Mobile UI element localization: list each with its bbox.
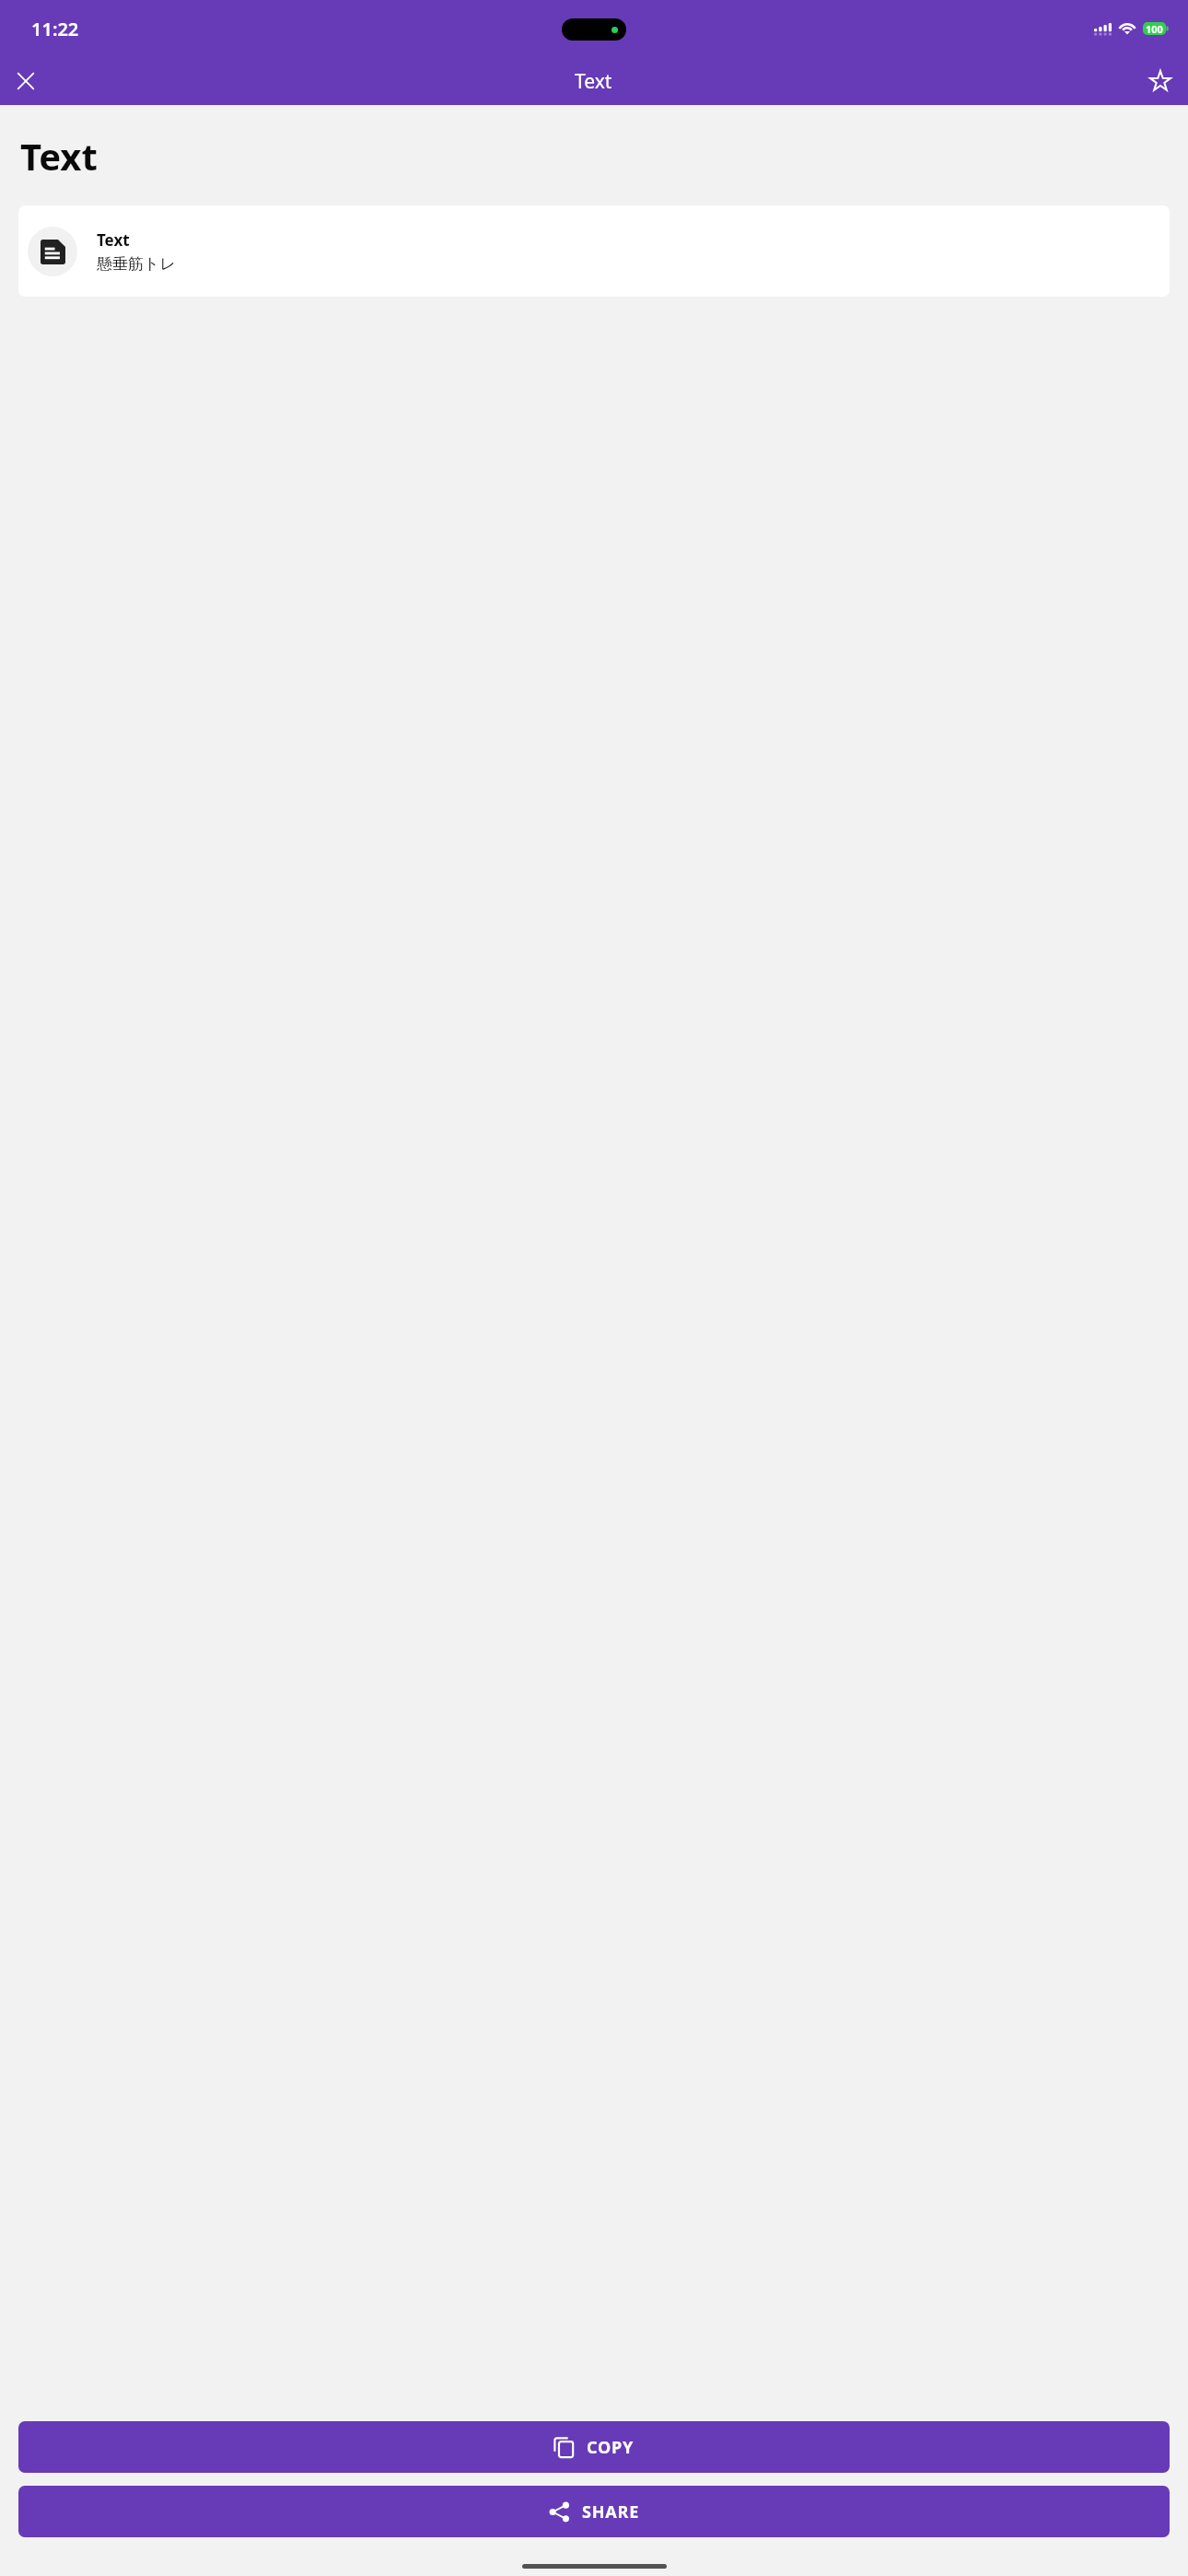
- staticText: Text: [97, 229, 130, 251]
- staticText: SHARE: [582, 2500, 640, 2523]
- button[interactable]: COPY: [18, 2421, 1170, 2473]
- staticText: 懸垂筋トレ: [97, 254, 176, 274]
- staticText: Text: [575, 68, 612, 95]
- staticText: 11:22: [31, 17, 79, 41]
- staticText: 100: [1146, 22, 1163, 35]
- button[interactable]: SHARE: [18, 2486, 1170, 2537]
- staticText: Text: [20, 131, 98, 181]
- button[interactable]: Close: [4, 59, 48, 103]
- button[interactable]: Text: [18, 205, 1170, 297]
- button[interactable]: Favorite: [1138, 59, 1182, 103]
- staticText: COPY: [587, 2436, 635, 2459]
